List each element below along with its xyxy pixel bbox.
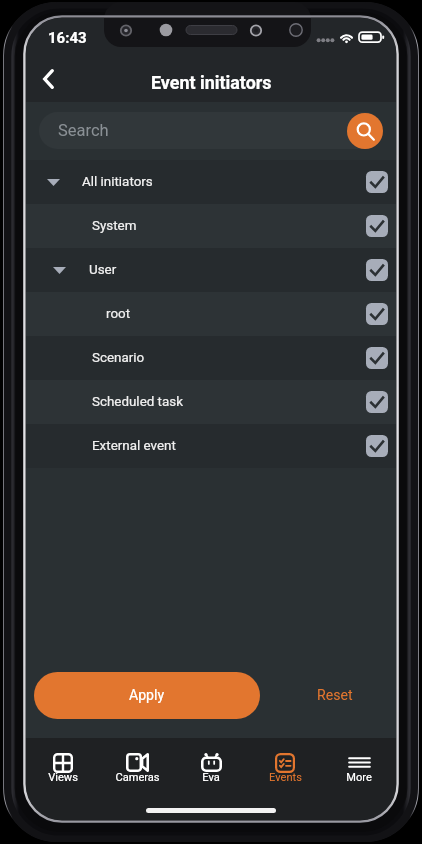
staticText: Scheduled task xyxy=(92,394,183,410)
staticText: All initiators xyxy=(82,174,153,190)
staticText: More xyxy=(346,771,372,784)
button[interactable]: External event xyxy=(26,424,396,468)
staticText: 16:43 xyxy=(48,29,87,47)
button[interactable]: Toggle root xyxy=(362,299,392,329)
button[interactable]: Apply xyxy=(34,672,260,719)
button[interactable]: Search xyxy=(39,112,383,149)
staticText: Events xyxy=(269,771,302,784)
button[interactable]: Views xyxy=(26,738,100,787)
button[interactable]: System xyxy=(26,204,396,248)
button[interactable]: User xyxy=(26,248,396,292)
staticText: Eva xyxy=(202,771,220,784)
button[interactable]: Toggle External event xyxy=(362,431,392,461)
button[interactable]: Reset xyxy=(288,672,382,719)
button[interactable]: Search xyxy=(347,113,383,149)
button[interactable]: Toggle Scheduled task xyxy=(362,387,392,417)
staticText: root xyxy=(106,306,131,322)
staticText: Scenario xyxy=(92,350,145,366)
staticText: Cameras xyxy=(115,771,160,784)
button[interactable]: root xyxy=(26,292,396,336)
button[interactable]: Cameras xyxy=(100,738,174,787)
staticText: Search xyxy=(58,121,109,140)
staticText: Event initiators xyxy=(151,72,272,93)
button[interactable]: Toggle All initiators xyxy=(362,167,392,197)
button[interactable]: Events xyxy=(248,738,322,787)
staticText: System xyxy=(92,218,137,234)
button[interactable]: More xyxy=(322,738,396,787)
staticText: External event xyxy=(92,438,176,454)
button[interactable]: Eva xyxy=(174,738,248,787)
staticText: Apply xyxy=(129,687,165,704)
button[interactable]: Scheduled task xyxy=(26,380,396,424)
staticText: User xyxy=(89,262,117,278)
button[interactable]: Toggle Scenario xyxy=(362,343,392,373)
button[interactable]: Toggle System xyxy=(362,211,392,241)
button[interactable]: Toggle User xyxy=(362,255,392,285)
staticText: Reset xyxy=(317,687,353,704)
button[interactable]: All initiators xyxy=(26,160,396,204)
button[interactable]: Scenario xyxy=(26,336,396,380)
button[interactable]: Back xyxy=(26,57,70,101)
staticText: Views xyxy=(48,771,78,784)
